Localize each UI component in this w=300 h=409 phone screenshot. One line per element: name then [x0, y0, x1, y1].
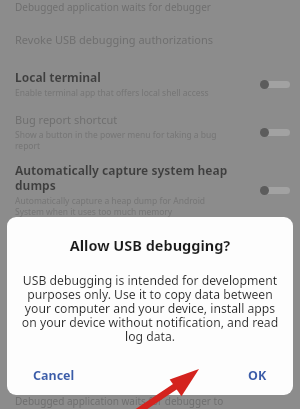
button[interactable]: Local terminal — [0, 65, 300, 103]
button[interactable]: Toggle Automatically capture system heap… — [260, 183, 292, 197]
staticText: USB debugging is intended for developmen… — [16, 272, 284, 345]
staticText: Debugged application waits for debugger — [15, 0, 211, 14]
staticText: Bug report shortcut — [15, 112, 118, 127]
staticText: Enable terminal app that offers local sh… — [15, 87, 209, 99]
staticText: Show a button in the power menu for taki… — [15, 129, 217, 151]
staticText: Cancel — [33, 367, 75, 384]
staticText: Debugged application waits for debugger … — [15, 394, 224, 408]
button[interactable]: OK — [236, 361, 279, 390]
button[interactable]: Toggle Bug report shortcut — [260, 125, 292, 139]
button[interactable]: Revoke USB debugging authorizations — [0, 28, 300, 51]
button[interactable]: Toggle Local terminal — [260, 77, 292, 91]
staticText: Automatically capture system heap dumps — [15, 162, 228, 193]
button[interactable]: Cancel — [21, 361, 87, 390]
staticText: Revoke USB debugging authorizations — [15, 32, 214, 47]
button[interactable]: Bug report shortcut — [0, 108, 300, 155]
staticText: Allow USB debugging? — [7, 235, 293, 255]
staticText: Local terminal — [15, 69, 101, 85]
button[interactable]: Automatically capture system heap dumps — [0, 158, 300, 221]
staticText: Automatically capture a heap dump for An… — [15, 195, 206, 217]
staticText: OK — [248, 367, 267, 384]
